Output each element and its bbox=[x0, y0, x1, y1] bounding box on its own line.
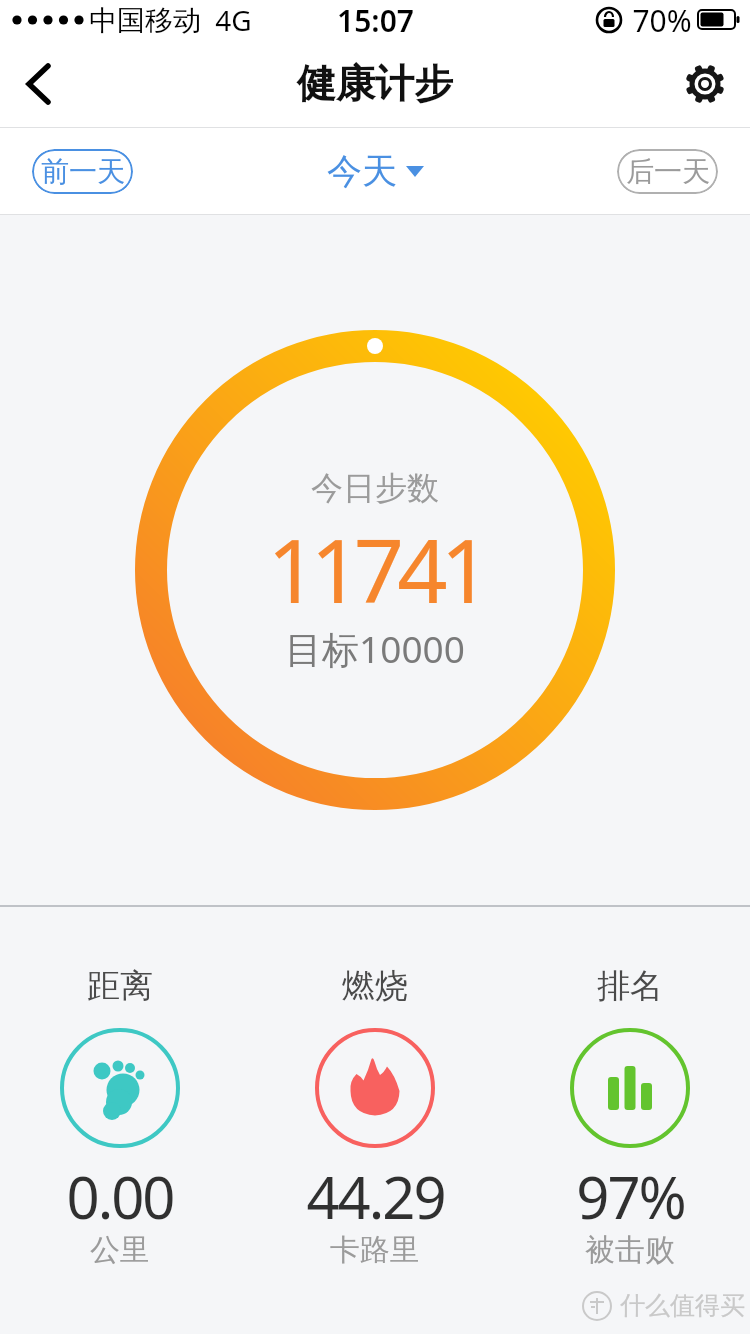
staticText: 今天 bbox=[327, 149, 397, 193]
staticText: 4G bbox=[215, 1, 252, 39]
staticText: 什么值得买 bbox=[620, 1290, 745, 1321]
staticText: 前一天 bbox=[41, 154, 125, 189]
button[interactable] bbox=[16, 62, 60, 106]
staticText: 44.29 bbox=[306, 1157, 445, 1236]
button[interactable] bbox=[682, 61, 728, 107]
staticText: 97% bbox=[576, 1157, 685, 1236]
staticText: 公里 bbox=[90, 1231, 150, 1269]
button[interactable]: 今天 bbox=[327, 149, 424, 193]
staticText: 后一天 bbox=[626, 154, 710, 189]
staticText: 目标10000 bbox=[285, 623, 465, 674]
staticText: 健康计步 bbox=[297, 59, 453, 108]
staticText: 中国移动 bbox=[89, 3, 201, 38]
staticText: 11741 bbox=[267, 509, 484, 629]
staticText: 卡路里 bbox=[330, 1231, 420, 1269]
staticText: 15:07 bbox=[337, 0, 414, 40]
button[interactable]: 燃烧 bbox=[265, 960, 485, 1334]
staticText: 0.00 bbox=[66, 1157, 174, 1236]
button[interactable]: 距离 bbox=[10, 960, 230, 1334]
staticText: 70% bbox=[632, 0, 692, 40]
staticText: 距离 bbox=[87, 965, 153, 1007]
staticText: 今日步数 bbox=[311, 468, 439, 508]
button[interactable]: 前一天 bbox=[32, 149, 133, 194]
staticText: 排名 bbox=[597, 965, 663, 1007]
staticText: 被击败 bbox=[585, 1231, 675, 1269]
staticText: 燃烧 bbox=[342, 965, 408, 1007]
button[interactable]: 排名 bbox=[520, 960, 740, 1334]
button[interactable]: 后一天 bbox=[617, 149, 718, 194]
